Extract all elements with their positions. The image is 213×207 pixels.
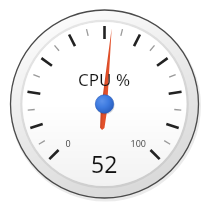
button[interactable]: CPU usage gauge, 52 percent — [0, 0, 213, 207]
